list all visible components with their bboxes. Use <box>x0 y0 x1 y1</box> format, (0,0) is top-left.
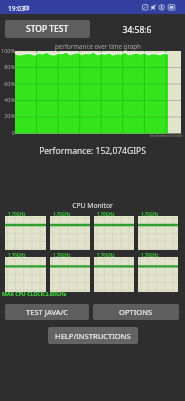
staticText: Performance: 152,074GIPS <box>0 145 185 157</box>
staticText: TEST JAVA/C <box>26 307 69 317</box>
staticText: 1.70GHz <box>141 211 159 217</box>
staticText: 100% <box>0 47 15 54</box>
staticText: STOP TEST <box>26 23 69 35</box>
staticText: 80% <box>0 63 15 70</box>
staticText: 1.70GHz <box>141 252 159 258</box>
staticText: HELP/INSTRUCTIONS <box>55 331 131 341</box>
staticText: 1.70GHz <box>97 211 115 217</box>
button[interactable]: OPTIONS <box>93 304 179 320</box>
button[interactable]: TEST JAVA/C <box>5 304 89 320</box>
staticText: 1.70GHz <box>8 211 26 217</box>
staticText: performance over time graph <box>15 42 181 50</box>
button[interactable]: STOP TEST <box>5 20 90 38</box>
staticText: 1.70GHz <box>97 252 115 258</box>
staticText: CPU Monitor <box>0 201 185 210</box>
staticText: 1.70GHz <box>8 252 26 258</box>
staticText: 0 <box>0 129 15 136</box>
staticText: 1.70GHz <box>53 252 71 258</box>
staticText: OPTIONS <box>119 307 153 317</box>
staticText: 19:03 <box>8 4 25 13</box>
staticText: 1.70GHz <box>53 211 71 217</box>
staticText: 60% <box>0 80 15 87</box>
button[interactable]: HELP/INSTRUCTIONS <box>48 327 138 344</box>
staticText: 34:58:6 <box>112 24 162 36</box>
staticText: 20% <box>0 112 15 119</box>
staticText: MAX CPU CLOCK:2.80GHz <box>2 290 67 297</box>
staticText: 40% <box>0 96 15 103</box>
staticText: time(interval 5min) <box>0 133 182 138</box>
